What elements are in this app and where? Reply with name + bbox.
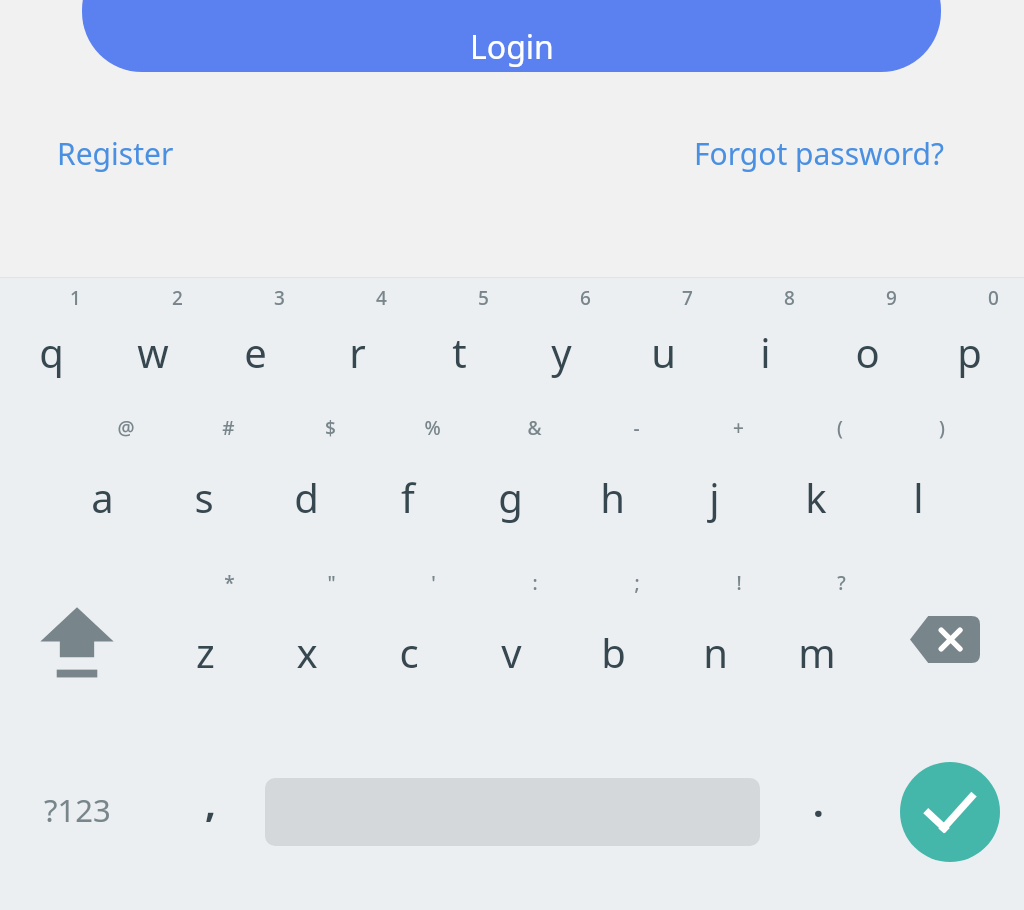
- button[interactable]: w: [102, 277, 204, 407]
- staticText: h: [600, 470, 625, 524]
- staticText: f: [401, 470, 415, 524]
- staticText: c: [399, 625, 419, 679]
- staticText: 8: [784, 285, 795, 311]
- button[interactable]: m: [766, 562, 868, 717]
- staticText: o: [855, 325, 880, 379]
- button[interactable]: Enter: [900, 762, 1000, 862]
- button[interactable]: b: [562, 562, 664, 717]
- staticText: *: [224, 570, 235, 596]
- button[interactable]: s: [153, 407, 255, 562]
- button[interactable]: p: [918, 277, 1020, 407]
- staticText: ?123: [44, 789, 111, 831]
- staticText: Forgot password?: [694, 133, 945, 174]
- staticText: ): [939, 415, 945, 441]
- staticText: s: [194, 470, 214, 524]
- staticText: Register: [57, 133, 174, 174]
- staticText: 3: [274, 285, 285, 311]
- staticText: 4: [376, 285, 387, 311]
- staticText: a: [91, 470, 114, 524]
- button[interactable]: h: [561, 407, 663, 562]
- staticText: $: [325, 415, 336, 441]
- staticText: 5: [478, 285, 489, 311]
- staticText: t: [452, 325, 467, 379]
- button[interactable]: r: [306, 277, 408, 407]
- staticText: ?: [837, 570, 846, 596]
- staticText: ,: [205, 776, 216, 828]
- staticText: !: [736, 570, 742, 596]
- staticText: ;: [634, 570, 640, 596]
- button[interactable]: g: [459, 407, 561, 562]
- staticText: Login: [470, 25, 554, 69]
- button[interactable]: a: [51, 407, 153, 562]
- staticText: b: [601, 625, 626, 679]
- staticText: i: [760, 325, 771, 379]
- button[interactable]: k: [765, 407, 867, 562]
- staticText: &: [527, 415, 542, 441]
- staticText: @: [117, 415, 135, 441]
- button[interactable]: x: [256, 562, 358, 717]
- button[interactable]: d: [255, 407, 357, 562]
- staticText: g: [498, 470, 523, 524]
- staticText: .: [813, 776, 824, 828]
- staticText: e: [244, 325, 267, 379]
- staticText: n: [703, 625, 728, 679]
- staticText: -: [633, 415, 640, 441]
- button[interactable]: Backspace: [868, 562, 1021, 717]
- staticText: ": [327, 570, 336, 596]
- staticText: %: [424, 415, 441, 441]
- staticText: v: [501, 625, 522, 679]
- staticText: l: [913, 470, 924, 524]
- button[interactable]: u: [612, 277, 714, 407]
- button[interactable]: l: [867, 407, 969, 562]
- staticText: y: [551, 325, 572, 379]
- button[interactable]: v: [460, 562, 562, 717]
- button[interactable]: y: [510, 277, 612, 407]
- staticText: w: [137, 325, 169, 379]
- staticText: d: [294, 470, 319, 524]
- button[interactable]: ,: [155, 717, 265, 907]
- staticText: :: [532, 570, 538, 596]
- button[interactable]: j: [663, 407, 765, 562]
- staticText: m: [798, 625, 836, 679]
- staticText: 2: [172, 285, 183, 311]
- button[interactable]: Login: [82, 0, 941, 72]
- button[interactable]: ?123: [0, 717, 155, 907]
- button[interactable]: i: [714, 277, 816, 407]
- staticText: u: [651, 325, 676, 379]
- staticText: 1: [70, 285, 81, 311]
- button[interactable]: Shift: [0, 562, 154, 717]
- button[interactable]: f: [357, 407, 459, 562]
- button[interactable]: q: [0, 277, 102, 407]
- button[interactable]: n: [664, 562, 766, 717]
- staticText: 9: [886, 285, 897, 311]
- staticText: p: [957, 325, 982, 379]
- button[interactable]: e: [204, 277, 306, 407]
- button[interactable]: t: [408, 277, 510, 407]
- staticText: #: [222, 415, 235, 441]
- button[interactable]: Register: [57, 133, 174, 174]
- staticText: r: [349, 325, 366, 379]
- staticText: 6: [580, 285, 591, 311]
- staticText: (: [837, 415, 843, 441]
- button[interactable]: .: [760, 717, 876, 907]
- staticText: z: [196, 625, 215, 679]
- staticText: +: [733, 415, 744, 441]
- staticText: ': [431, 570, 436, 596]
- staticText: k: [805, 470, 827, 524]
- staticText: j: [709, 470, 720, 524]
- staticText: q: [39, 325, 64, 379]
- staticText: 7: [682, 285, 693, 311]
- button[interactable]: z: [154, 562, 256, 717]
- staticText: 0: [988, 285, 999, 311]
- button[interactable]: c: [358, 562, 460, 717]
- button[interactable]: o: [816, 277, 918, 407]
- staticText: x: [296, 625, 318, 679]
- button[interactable]: Forgot password?: [694, 133, 945, 174]
